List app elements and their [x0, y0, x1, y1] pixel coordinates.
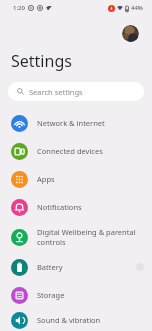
staticText: Digital Wellbeing & parental controls: [37, 227, 136, 247]
button[interactable]: Storage: [0, 281, 152, 309]
button[interactable]: Digital Wellbeing & parental controls: [0, 221, 152, 253]
staticText: Battery: [37, 262, 63, 272]
button[interactable]: Sound & vibration: [0, 309, 152, 331]
button[interactable]: Search settings: [8, 82, 144, 101]
staticText: 44%: [131, 4, 143, 12]
staticText: Storage: [37, 290, 65, 300]
staticText: Notifications: [37, 202, 82, 212]
button[interactable]: Battery: [0, 253, 152, 281]
staticText: Apps: [37, 174, 55, 184]
staticText: Network & internet: [37, 118, 105, 128]
button[interactable]: Account avatar: [122, 25, 139, 42]
staticText: Search settings: [29, 87, 83, 97]
staticText: Sound & vibration: [37, 315, 101, 325]
button[interactable]: Apps: [0, 165, 152, 193]
button[interactable]: Connected devices: [0, 137, 152, 165]
button[interactable]: Notifications: [0, 193, 152, 221]
staticText: Settings: [11, 50, 72, 72]
button[interactable]: Network & internet: [0, 109, 152, 137]
staticText: Connected devices: [37, 146, 103, 156]
staticText: 1:20: [13, 4, 25, 12]
